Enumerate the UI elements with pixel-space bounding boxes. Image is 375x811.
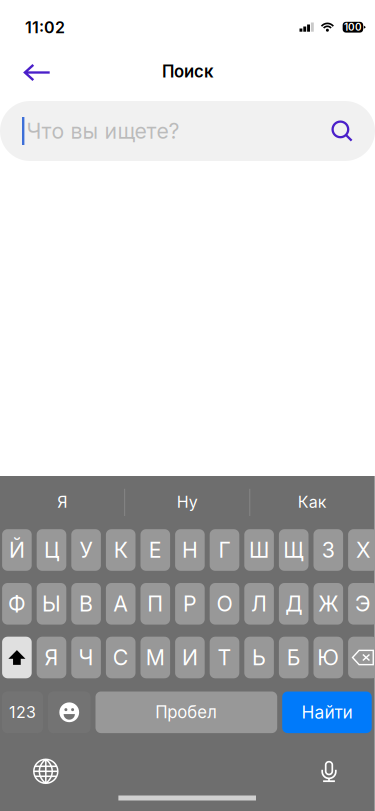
button[interactable]: Change keyboard bbox=[24, 749, 68, 793]
button[interactable]: Й bbox=[2, 529, 32, 571]
button[interactable]: М bbox=[140, 637, 170, 678]
button[interactable]: Shift bbox=[2, 637, 32, 678]
staticText: Ы bbox=[42, 591, 61, 617]
staticText: 100 bbox=[344, 21, 362, 33]
staticText: В bbox=[79, 591, 93, 617]
staticText: Я bbox=[57, 492, 67, 512]
staticText: Щ bbox=[283, 537, 304, 563]
button[interactable]: Ы bbox=[37, 583, 66, 625]
button[interactable]: Ш bbox=[244, 529, 274, 571]
staticText: Ну bbox=[177, 492, 198, 512]
staticText: Пробел bbox=[155, 702, 217, 722]
button[interactable]: Пробел bbox=[95, 691, 277, 733]
staticText: Н bbox=[182, 537, 198, 563]
button[interactable]: Т bbox=[210, 637, 239, 678]
staticText: О bbox=[216, 591, 232, 617]
staticText: А bbox=[113, 591, 128, 617]
button[interactable]: Emoji bbox=[48, 691, 90, 733]
staticText: Х bbox=[356, 537, 370, 563]
button[interactable]: Н bbox=[175, 529, 205, 571]
button[interactable]: Л bbox=[244, 583, 274, 625]
button[interactable]: Ж bbox=[313, 583, 343, 625]
staticText: Ш bbox=[249, 537, 269, 563]
button[interactable]: Ь bbox=[244, 637, 274, 678]
staticText: 123 bbox=[9, 703, 36, 722]
button[interactable]: К bbox=[106, 529, 135, 571]
staticText: Ь bbox=[252, 645, 266, 670]
button[interactable]: Dictate bbox=[307, 749, 351, 793]
button[interactable]: Э bbox=[348, 583, 375, 625]
staticText: И bbox=[182, 645, 198, 670]
staticText: Ф bbox=[8, 591, 26, 617]
button[interactable]: Д bbox=[279, 583, 308, 625]
button[interactable]: Б bbox=[279, 637, 308, 678]
staticText: Найти bbox=[301, 702, 352, 723]
staticText: Поиск bbox=[162, 61, 213, 82]
staticText: Ч bbox=[79, 645, 94, 670]
button[interactable]: Х bbox=[348, 529, 375, 571]
button[interactable]: А bbox=[106, 583, 135, 625]
button[interactable]: Back bbox=[15, 50, 59, 94]
button[interactable]: Щ bbox=[279, 529, 308, 571]
button[interactable]: Р bbox=[175, 583, 205, 625]
staticText: З bbox=[322, 537, 335, 563]
staticText: Ц bbox=[44, 537, 59, 563]
button[interactable]: С bbox=[106, 637, 135, 678]
button[interactable]: Ну bbox=[125, 476, 250, 528]
button[interactable]: П bbox=[140, 583, 170, 625]
button[interactable]: Delete bbox=[348, 637, 375, 678]
staticText: Э bbox=[355, 591, 371, 617]
button[interactable]: Я bbox=[0, 476, 125, 528]
button[interactable]: Я bbox=[37, 637, 66, 678]
staticText: Как bbox=[298, 492, 327, 512]
staticText: Что вы ищете? bbox=[26, 118, 179, 144]
button[interactable]: В bbox=[71, 583, 101, 625]
staticText: Р bbox=[183, 591, 197, 617]
staticText: Ж bbox=[318, 591, 338, 617]
staticText: Я bbox=[44, 645, 58, 670]
button[interactable]: О bbox=[210, 583, 239, 625]
button[interactable]: Найти bbox=[282, 691, 372, 733]
button[interactable]: Ю bbox=[313, 637, 343, 678]
staticText: 11:02 bbox=[25, 18, 65, 37]
button[interactable]: Как bbox=[250, 476, 375, 528]
staticText: Е bbox=[149, 537, 162, 563]
button[interactable]: Г bbox=[210, 529, 239, 571]
staticText: Б bbox=[287, 645, 301, 670]
staticText: Г bbox=[218, 537, 230, 563]
staticText: М bbox=[146, 645, 165, 670]
staticText: К bbox=[114, 537, 128, 563]
staticText: Т bbox=[217, 645, 231, 670]
button[interactable]: У bbox=[71, 529, 101, 571]
button[interactable]: Ц bbox=[37, 529, 66, 571]
staticText: Й bbox=[9, 537, 25, 563]
button[interactable]: З bbox=[313, 529, 343, 571]
button[interactable]: Ф bbox=[2, 583, 32, 625]
staticText: Ю bbox=[317, 645, 339, 670]
staticText: Д bbox=[285, 591, 302, 617]
staticText: С bbox=[113, 645, 129, 670]
button[interactable]: И bbox=[175, 637, 205, 678]
staticText: У bbox=[80, 537, 93, 563]
staticText: П bbox=[147, 591, 163, 617]
button[interactable]: Е bbox=[140, 529, 170, 571]
button[interactable]: 123 bbox=[2, 691, 43, 733]
staticText: Л bbox=[251, 591, 267, 617]
button[interactable]: Ч bbox=[71, 637, 101, 678]
